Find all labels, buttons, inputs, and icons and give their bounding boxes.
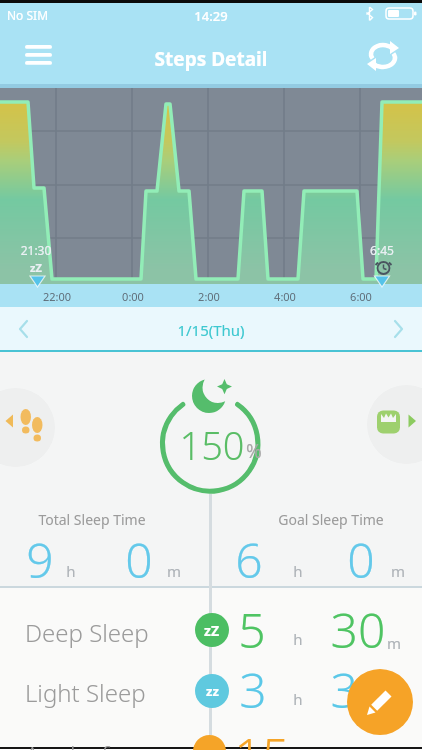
staticText: 3 [223,657,283,722]
staticText: 4:00 [255,289,315,304]
staticText: m [379,633,409,653]
staticText: h [283,629,313,649]
staticText: 6 [219,527,279,592]
staticText: zz [206,682,219,700]
staticText: m [383,561,413,581]
staticText: 150 [152,419,272,471]
staticText: 21:30 [6,242,66,258]
staticText: zZ [204,621,220,640]
staticText: 30 [328,597,388,662]
button[interactable] [0,388,55,467]
staticText: zZ [18,260,54,275]
staticText: 9 [10,527,70,592]
staticText: 1/15(Thu) [141,320,281,340]
button[interactable] [384,314,414,344]
staticText: h [283,561,313,581]
staticText: 2:00 [179,289,239,304]
staticText: 6:00 [331,289,391,304]
staticText: 22:00 [27,289,87,304]
staticText: 30 [328,657,388,722]
staticText: h [283,689,313,709]
button[interactable] [347,669,413,735]
staticText: Deep Sleep [25,616,185,649]
staticText: 0 [331,527,391,592]
staticText: m [159,561,189,581]
button[interactable] [0,307,422,352]
staticText: 0 [109,527,169,592]
staticText: 14:29 [181,7,241,25]
staticText: % [239,438,269,464]
button[interactable] [367,385,422,464]
staticText: 6:45 [352,242,412,258]
staticText: 0:00 [103,289,163,304]
staticText: Goal Sleep Time [261,510,401,529]
staticText: Steps Detail [111,46,311,72]
staticText: 5 [222,597,282,662]
button[interactable] [366,40,402,72]
button[interactable] [8,314,38,344]
staticText: Total Sleep Time [22,510,162,529]
button[interactable] [18,38,58,74]
staticText: No SIM [7,7,67,23]
staticText: Awake for [25,738,185,750]
staticText: Light Sleep [25,676,185,709]
staticText: 15 [232,722,292,750]
staticText: h [56,561,86,581]
